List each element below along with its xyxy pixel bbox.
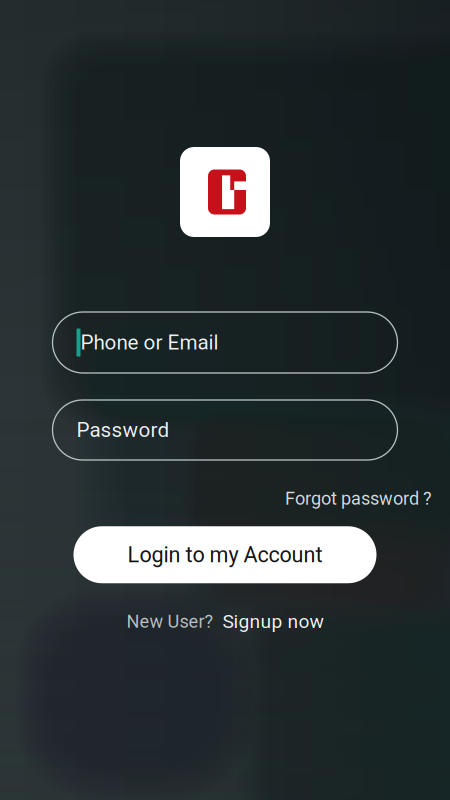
button[interactable]: Signup now (222, 610, 323, 633)
staticText: Forgot password ? (285, 488, 432, 509)
button[interactable]: Login to my Account (73, 526, 376, 583)
staticText: Login to my Account (127, 542, 322, 567)
staticText: Password (76, 418, 169, 442)
staticText: Phone or Email (80, 330, 218, 355)
staticText: New User? (126, 611, 213, 632)
button[interactable]: Forgot password ? (285, 485, 432, 512)
staticText: Signup now (222, 610, 323, 633)
